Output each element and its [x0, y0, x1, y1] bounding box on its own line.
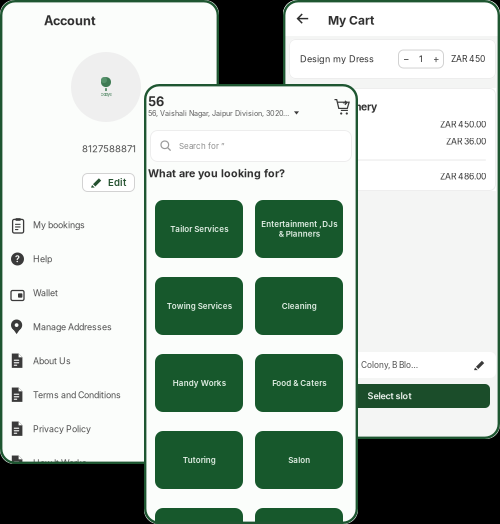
button[interactable]: Handy Works: [155, 354, 243, 412]
button[interactable]: Edit address: [474, 359, 485, 370]
staticText: 8127588871: [82, 143, 136, 155]
staticText: 1: [419, 53, 423, 65]
staticText: Design my Dress: [300, 53, 374, 64]
staticText: Tutoring: [182, 455, 215, 465]
staticText: Manage Addresses: [33, 322, 112, 332]
staticText: Order Summery: [299, 100, 377, 113]
staticText: Tailor Services: [170, 224, 228, 234]
button[interactable]: How It Works: [0, 446, 219, 480]
staticText: About Us: [33, 356, 71, 366]
staticText: 2, Indraprastha Colony, B Blo…: [300, 360, 418, 370]
staticText: My bookings: [33, 220, 85, 230]
button[interactable]: My bookings: [0, 208, 219, 242]
button[interactable]: Packers & Movers: [155, 508, 243, 524]
button[interactable]: Edit: [82, 173, 135, 192]
staticText: 56, Vaishali Nagar, Jaipur Division, 302…: [148, 109, 289, 118]
button[interactable]: Towing Services: [155, 277, 243, 335]
staticText: Account: [44, 13, 96, 28]
button[interactable]: Back: [291, 7, 315, 31]
staticText: Search for ˮ: [179, 141, 225, 151]
button[interactable]: Terms and Conditions: [0, 378, 219, 412]
staticText: Odbye: [100, 92, 111, 97]
staticText: Edit: [108, 177, 126, 188]
button[interactable]: Cart: [334, 96, 350, 114]
button[interactable]: Privacy Policy: [0, 412, 219, 446]
staticText: ZAR 450: [451, 54, 485, 64]
staticText: ?: [15, 254, 20, 264]
staticText: Salon: [288, 455, 310, 465]
staticText: ZAR 486.00: [440, 171, 486, 182]
staticText: My Cart: [328, 13, 374, 27]
staticText: +: [432, 52, 439, 65]
staticText: Terms and Conditions: [33, 390, 121, 400]
button[interactable]: Cleaning: [255, 277, 343, 335]
staticText: Handy Works: [172, 378, 225, 388]
button[interactable]: About Us: [0, 344, 219, 378]
button[interactable]: Search for ˮ: [150, 130, 352, 162]
staticText: ZAR 36.00: [446, 136, 486, 147]
staticText: −: [402, 52, 409, 65]
button[interactable]: Manage Addresses: [0, 310, 219, 344]
staticText: Help: [33, 254, 52, 264]
staticText: 56: [148, 94, 164, 109]
button[interactable]: Food & Caters: [255, 354, 343, 412]
button[interactable]: Entertainment ,DJs & Planners: [255, 200, 343, 258]
button[interactable]: Increase quantity: [428, 50, 444, 68]
staticText: Select slot: [367, 390, 411, 401]
staticText: Towing Services: [166, 301, 231, 311]
button[interactable]: Wallet: [0, 276, 219, 310]
staticText: How It Works: [33, 458, 87, 468]
button[interactable]: Pest Control: [255, 508, 343, 524]
staticText: Cleaning: [281, 301, 316, 311]
button[interactable]: Tailor Services: [155, 200, 243, 258]
button[interactable]: ?: [0, 242, 219, 276]
staticText: ZAR 450.00: [440, 119, 486, 130]
button[interactable]: Decrease quantity: [398, 50, 414, 68]
staticText: Food & Caters: [272, 378, 326, 388]
staticText: What are you looking for?: [148, 167, 285, 180]
staticText: Privacy Policy: [33, 424, 91, 434]
button[interactable]: Select slot: [289, 384, 490, 408]
staticText: Wallet: [33, 288, 58, 298]
staticText: Entertainment ,DJs & Planners: [261, 219, 337, 239]
button[interactable]: Salon: [255, 431, 343, 489]
button[interactable]: Tutoring: [155, 431, 243, 489]
